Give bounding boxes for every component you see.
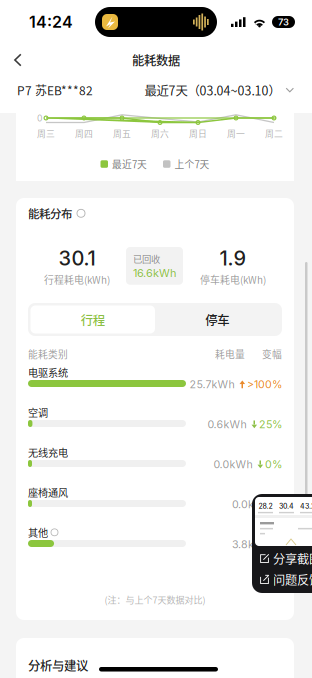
button[interactable]: 停车 [155, 305, 279, 333]
staticText: 变幅 [262, 347, 282, 361]
staticText: 0.0kWh [213, 458, 252, 471]
staticText: 耗电量 [215, 347, 245, 361]
staticText: 电驱系统 [28, 365, 68, 380]
staticText: 周二 [265, 127, 283, 140]
staticText: 最近7天 [112, 157, 147, 171]
staticText: >100% [247, 378, 282, 391]
staticText: 能耗分布 [28, 205, 72, 222]
button[interactable]: Back [0, 44, 36, 75]
staticText: 0.6kWh [207, 418, 246, 431]
staticText: 0 [37, 113, 42, 123]
staticText: 周五 [113, 127, 131, 140]
staticText: 周四 [75, 127, 93, 140]
staticText: 25% [259, 418, 282, 431]
staticText: 0% [265, 458, 282, 471]
staticText: 43.2 [300, 502, 312, 510]
staticText: 30.1 [58, 246, 95, 270]
staticText: 座椅通风 [28, 485, 68, 500]
button[interactable]: P7 苏EB***82 [17, 81, 93, 99]
staticText: 无线充电 [28, 445, 68, 460]
staticText: 行程耗电(kWh) [44, 272, 110, 286]
button[interactable]: 问题反馈 [252, 568, 312, 591]
button[interactable]: 最近7天（03.04~03.10） [145, 81, 294, 99]
staticText: 停车耗电(kWh) [200, 272, 266, 286]
staticText: 1.9 [219, 246, 246, 270]
staticText: 已回收 [133, 252, 160, 265]
staticText: 分析与建议 [28, 656, 88, 674]
staticText: 73 [278, 16, 289, 28]
staticText: 上个7天 [174, 157, 209, 171]
button[interactable]: 分享截图 [252, 547, 312, 570]
staticText: 能耗数据 [132, 51, 180, 69]
staticText: 周日 [189, 127, 207, 140]
staticText: (注：与上个7天数据对比) [104, 593, 205, 606]
staticText: 最近7天（03.04~03.10） [145, 81, 281, 99]
staticText: 25.7kWh [189, 378, 234, 391]
staticText: 问题反馈 [273, 571, 312, 588]
staticText: 28.2 [258, 502, 272, 510]
staticText: 3.8kWh [232, 538, 271, 551]
staticText: 分享截图 [273, 550, 312, 567]
staticText: 其他 [28, 525, 48, 540]
staticText: 0.0kWh [232, 498, 271, 511]
staticText: 周六 [151, 127, 169, 140]
staticText: 停车 [205, 310, 229, 328]
staticText: 能耗类别 [28, 347, 68, 361]
staticText: 14:24 [29, 12, 73, 32]
staticText: 30.4 [279, 502, 294, 510]
button[interactable]: 行程 [30, 305, 155, 333]
staticText: 16.6kWh [133, 266, 176, 280]
staticText: 行程 [81, 310, 105, 328]
staticText: 空调 [28, 405, 48, 420]
staticText: 周一 [227, 127, 245, 140]
staticText: P7 苏EB***82 [17, 81, 93, 99]
staticText: 周三 [37, 127, 55, 140]
